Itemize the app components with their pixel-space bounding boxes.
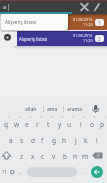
staticText: x bbox=[31, 152, 35, 161]
staticText: 01.08.2016 bbox=[73, 33, 93, 38]
staticText: p bbox=[100, 120, 104, 129]
staticText: h bbox=[62, 136, 67, 145]
staticText: Alışveriş listesi bbox=[19, 36, 48, 42]
button[interactable]: ama bbox=[44, 104, 60, 114]
button[interactable]: a bbox=[5, 133, 16, 148]
button[interactable]: i bbox=[75, 117, 86, 132]
button[interactable]: Alışveriş listesi bbox=[1, 14, 68, 30]
button[interactable]: k bbox=[80, 133, 91, 148]
button[interactable]: . bbox=[79, 166, 87, 178]
button[interactable]: e bbox=[21, 117, 32, 132]
staticText: f bbox=[41, 136, 44, 145]
staticText: q bbox=[4, 120, 8, 129]
button[interactable]: p bbox=[96, 117, 107, 132]
button[interactable]: c bbox=[37, 149, 48, 164]
staticText: n bbox=[73, 152, 78, 161]
staticText: i bbox=[80, 120, 82, 129]
button[interactable]: n bbox=[70, 149, 81, 164]
staticText: g bbox=[52, 136, 56, 145]
button[interactable]: 2 bbox=[95, 35, 104, 42]
button[interactable]: j bbox=[70, 133, 81, 148]
button[interactable]: , bbox=[16, 166, 24, 178]
button[interactable]: o bbox=[86, 117, 97, 132]
staticText: z bbox=[20, 152, 24, 161]
button[interactable]: w bbox=[11, 117, 22, 132]
button[interactable]: m bbox=[80, 149, 91, 164]
button[interactable]: allah bbox=[21, 104, 41, 114]
button[interactable]: l bbox=[91, 133, 102, 148]
staticText: 11:25 bbox=[83, 38, 93, 43]
button[interactable] bbox=[91, 149, 107, 164]
staticText: a bbox=[9, 136, 13, 145]
button[interactable] bbox=[91, 0, 104, 13]
staticText: 1 bbox=[98, 20, 101, 26]
button[interactable]: f bbox=[37, 133, 48, 148]
staticText: a bbox=[3, 3, 7, 11]
button[interactable] bbox=[88, 104, 102, 114]
button[interactable]: y bbox=[54, 117, 65, 132]
button[interactable]: q bbox=[0, 117, 11, 132]
staticText: y bbox=[58, 120, 62, 129]
staticText: ?1 bbox=[2, 169, 8, 176]
button[interactable]: ?1 bbox=[0, 166, 10, 178]
staticText: arama bbox=[67, 106, 83, 113]
staticText: l bbox=[96, 136, 98, 145]
staticText: t bbox=[47, 120, 50, 129]
staticText: 01.08.2016 bbox=[73, 17, 93, 22]
button[interactable] bbox=[0, 149, 16, 164]
staticText: o bbox=[90, 120, 94, 129]
staticText: w bbox=[14, 120, 20, 129]
button[interactable]: x bbox=[27, 149, 38, 164]
staticText: 11:25 bbox=[83, 22, 93, 27]
button[interactable] bbox=[27, 167, 77, 177]
button[interactable]: r bbox=[32, 117, 43, 132]
button[interactable] bbox=[91, 166, 103, 178]
staticText: b bbox=[63, 152, 67, 161]
staticText: , bbox=[19, 168, 21, 176]
button[interactable]: s bbox=[16, 133, 27, 148]
button[interactable]: 1 bbox=[95, 19, 104, 26]
staticText: e bbox=[25, 120, 29, 129]
staticText: c bbox=[41, 152, 45, 161]
button[interactable]: d bbox=[27, 133, 38, 148]
button[interactable]: u bbox=[64, 117, 75, 132]
staticText: r bbox=[36, 120, 39, 129]
button[interactable]: h bbox=[59, 133, 70, 148]
button[interactable]: t bbox=[43, 117, 54, 132]
staticText: s bbox=[20, 136, 24, 145]
button[interactable] bbox=[17, 31, 107, 46]
staticText: k bbox=[84, 136, 88, 145]
button[interactable]: z bbox=[16, 149, 27, 164]
button[interactable]: arama bbox=[64, 104, 86, 114]
staticText: 2 bbox=[98, 36, 101, 42]
staticText: d bbox=[31, 136, 35, 145]
button[interactable]: g bbox=[48, 133, 59, 148]
staticText: allah bbox=[25, 106, 37, 113]
staticText: v bbox=[52, 152, 56, 161]
staticText: ama bbox=[47, 106, 58, 113]
staticText: u bbox=[67, 120, 72, 129]
button[interactable] bbox=[78, 0, 91, 13]
button[interactable]: v bbox=[48, 149, 59, 164]
button[interactable]: b bbox=[59, 149, 70, 164]
button[interactable] bbox=[17, 14, 107, 30]
staticText: j bbox=[75, 136, 77, 145]
staticText: m bbox=[82, 152, 89, 161]
staticText: . bbox=[82, 168, 84, 176]
staticText: Alışveriş listesi bbox=[5, 19, 37, 25]
